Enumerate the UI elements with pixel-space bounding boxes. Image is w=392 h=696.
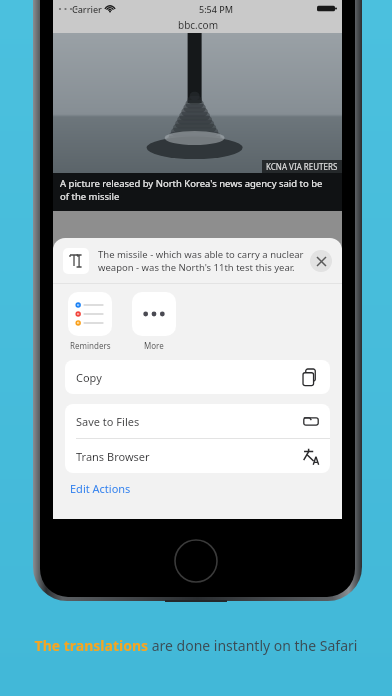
staticText: Copy bbox=[76, 370, 102, 385]
button[interactable]: Trans Browser bbox=[65, 439, 330, 473]
staticText: Save to Files bbox=[76, 414, 140, 429]
button[interactable]: Close bbox=[310, 250, 332, 272]
button[interactable]: Copy bbox=[65, 360, 330, 394]
button[interactable]: Save to Files bbox=[65, 404, 330, 438]
staticText: KCNA VIA REUTERS bbox=[266, 161, 338, 172]
staticText: The missile - which was able to carry a … bbox=[98, 248, 304, 274]
button[interactable]: Edit Actions bbox=[65, 481, 330, 496]
button[interactable]: More bbox=[131, 292, 177, 351]
staticText: The translations are done instantly on t… bbox=[0, 636, 392, 655]
button[interactable]: Reminders bbox=[67, 292, 113, 351]
staticText: Reminders bbox=[70, 340, 111, 351]
staticText: Trans Browser bbox=[76, 449, 150, 464]
staticText: More bbox=[144, 340, 164, 351]
staticText: A picture released by North Korea's news… bbox=[60, 177, 323, 203]
staticText: Carrier bbox=[72, 3, 102, 15]
staticText: 5:54 PM bbox=[199, 3, 233, 15]
staticText: bbc.com bbox=[178, 18, 218, 32]
staticText: Edit Actions bbox=[70, 481, 131, 496]
